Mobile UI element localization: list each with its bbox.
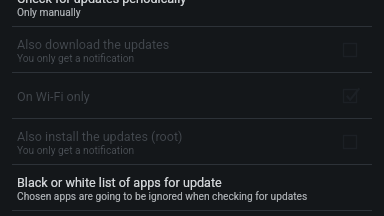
button[interactable]: Also install the updates (root) xyxy=(0,119,384,164)
staticText: You only get a notification xyxy=(17,53,135,65)
other: Unchecked xyxy=(341,133,359,151)
button[interactable]: Check for updates periodically xyxy=(0,0,384,26)
staticText: You only get a notification xyxy=(17,145,135,157)
staticText: On Wi-Fi only xyxy=(17,89,90,104)
button[interactable]: On Wi-Fi only xyxy=(0,73,384,118)
button[interactable]: Also download the updates xyxy=(0,27,384,72)
other: Checked xyxy=(341,87,359,105)
staticText: Also download the updates xyxy=(17,37,170,52)
staticText: Also install the updates (root) xyxy=(17,129,183,144)
button[interactable]: Black or white list of apps for update xyxy=(0,165,384,210)
staticText: Only manually xyxy=(17,7,81,19)
staticText: Check for updates periodically xyxy=(17,0,187,6)
other: Unchecked xyxy=(341,41,359,59)
staticText: Black or white list of apps for update xyxy=(17,175,222,190)
staticText: Chosen apps are going to be ignored when… xyxy=(17,191,308,203)
